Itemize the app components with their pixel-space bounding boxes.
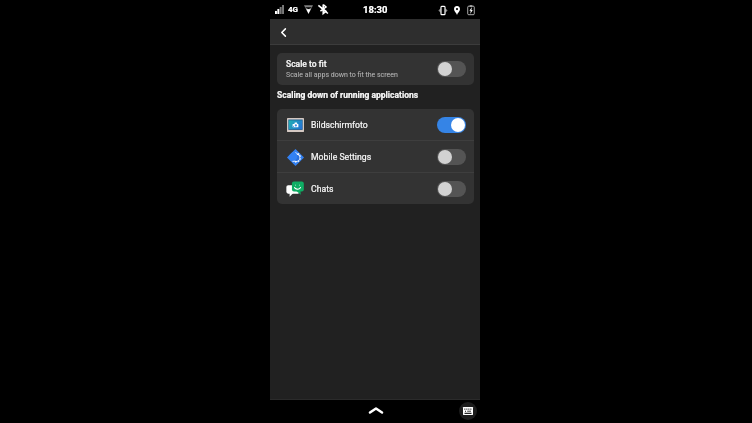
- button[interactable]: Disabled: [437, 61, 466, 77]
- button[interactable]: Bildschirmfoto: [277, 109, 474, 140]
- button[interactable]: Enabled: [437, 117, 466, 133]
- button[interactable]: Keyboard: [459, 402, 477, 420]
- button[interactable]: Disabled: [437, 149, 466, 165]
- staticText: Chats: [311, 184, 334, 194]
- staticText: Scale to fit: [286, 59, 327, 69]
- staticText: Scaling down of running applications: [277, 90, 419, 100]
- button[interactable]: Disabled: [437, 181, 466, 197]
- button[interactable]: Mobile Settings: [277, 141, 474, 172]
- staticText: Mobile Settings: [311, 152, 372, 162]
- staticText: Bildschirmfoto: [311, 120, 368, 130]
- staticText: 18:30: [363, 4, 388, 15]
- button[interactable]: Chats: [277, 173, 474, 204]
- staticText: 4G: [288, 5, 299, 14]
- staticText: Scale all apps down to fit the screen: [286, 71, 398, 79]
- button[interactable]: Scale to fit: [277, 53, 474, 85]
- button[interactable]: Back: [273, 22, 293, 42]
- button[interactable]: Back: [364, 399, 387, 422]
